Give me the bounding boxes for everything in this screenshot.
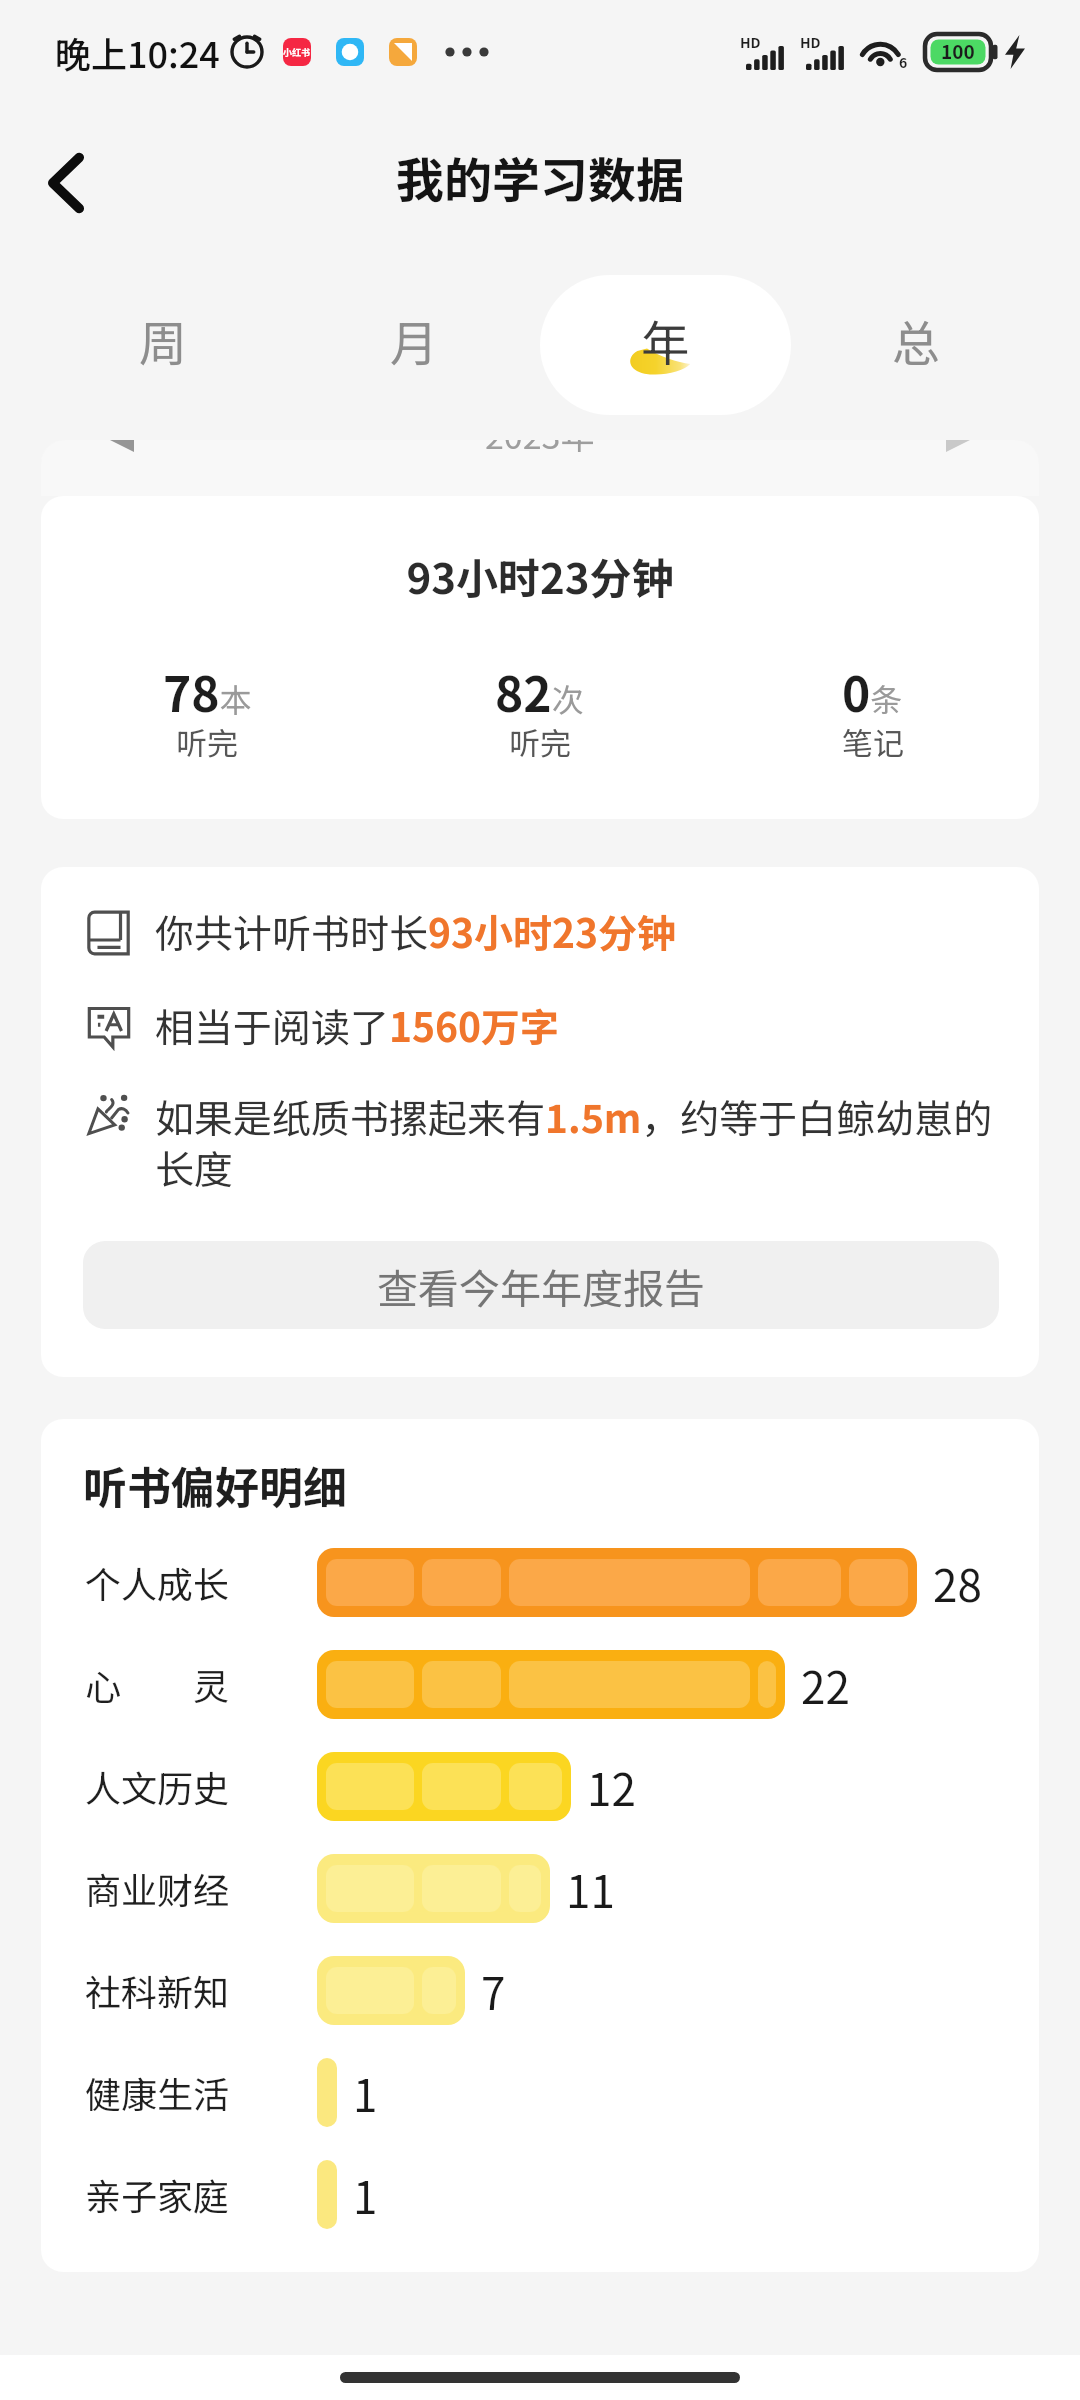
button[interactable]: 年 (540, 275, 791, 415)
staticText: 年 (641, 305, 690, 375)
staticText: 如果是纸质书摞起来有1.5m，约等于白鲸幼崽的长度 (155, 1088, 999, 1195)
staticText: 93小时23分钟 (41, 545, 1039, 606)
staticText: 1 (353, 2163, 378, 2227)
staticText: 月 (390, 305, 439, 375)
staticText: 周 (139, 305, 188, 375)
staticText: 相当于阅读了1560万字 (155, 997, 560, 1053)
staticText: HD (740, 32, 761, 52)
button[interactable]: 查看今年年度报告 (83, 1241, 999, 1329)
staticText: 亲子家庭 (85, 2168, 230, 2220)
staticText: 心 灵 (85, 1658, 230, 1710)
staticText: 100 (941, 37, 975, 65)
staticText: 我的学习数据 (396, 142, 685, 212)
staticText: 1 (353, 2061, 378, 2125)
button[interactable]: Next year (946, 440, 976, 452)
staticText: 商业财经 (85, 1862, 230, 1914)
button[interactable]: 周 (38, 275, 289, 415)
staticText: 你共计听书时长93小时23分钟 (155, 903, 677, 959)
button[interactable]: 总 (791, 275, 1042, 415)
staticText: 78本 (163, 656, 252, 726)
staticText: 社科新知 (85, 1964, 230, 2016)
staticText: 12 (587, 1755, 636, 1819)
button[interactable]: Back (20, 138, 110, 228)
staticText: 0条 (842, 656, 903, 726)
staticText: 人文历史 (85, 1760, 230, 1812)
staticText: 听完 (509, 719, 571, 764)
staticText: 健康生活 (85, 2066, 230, 2118)
button[interactable]: 月 (289, 275, 540, 415)
staticText: 2023年 (485, 440, 595, 459)
staticText: 7 (481, 1959, 506, 2023)
staticText: 听完 (176, 719, 238, 764)
staticText: HD (800, 32, 821, 52)
staticText: 28 (933, 1551, 982, 1615)
staticText: 22 (801, 1653, 850, 1717)
staticText: 小红书 (283, 46, 311, 59)
staticText: 11 (566, 1857, 615, 1921)
button[interactable]: Previous year (104, 440, 134, 452)
staticText: 6 (899, 52, 908, 72)
staticText: 82次 (495, 656, 584, 726)
staticText: 查看今年年度报告 (377, 1256, 705, 1315)
staticText: 听书偏好明细 (83, 1453, 347, 1517)
staticText: 笔记 (842, 719, 904, 764)
staticText: 总 (892, 305, 941, 375)
staticText: 个人成长 (85, 1556, 230, 1608)
staticText: 晚上10:24 (55, 26, 220, 78)
